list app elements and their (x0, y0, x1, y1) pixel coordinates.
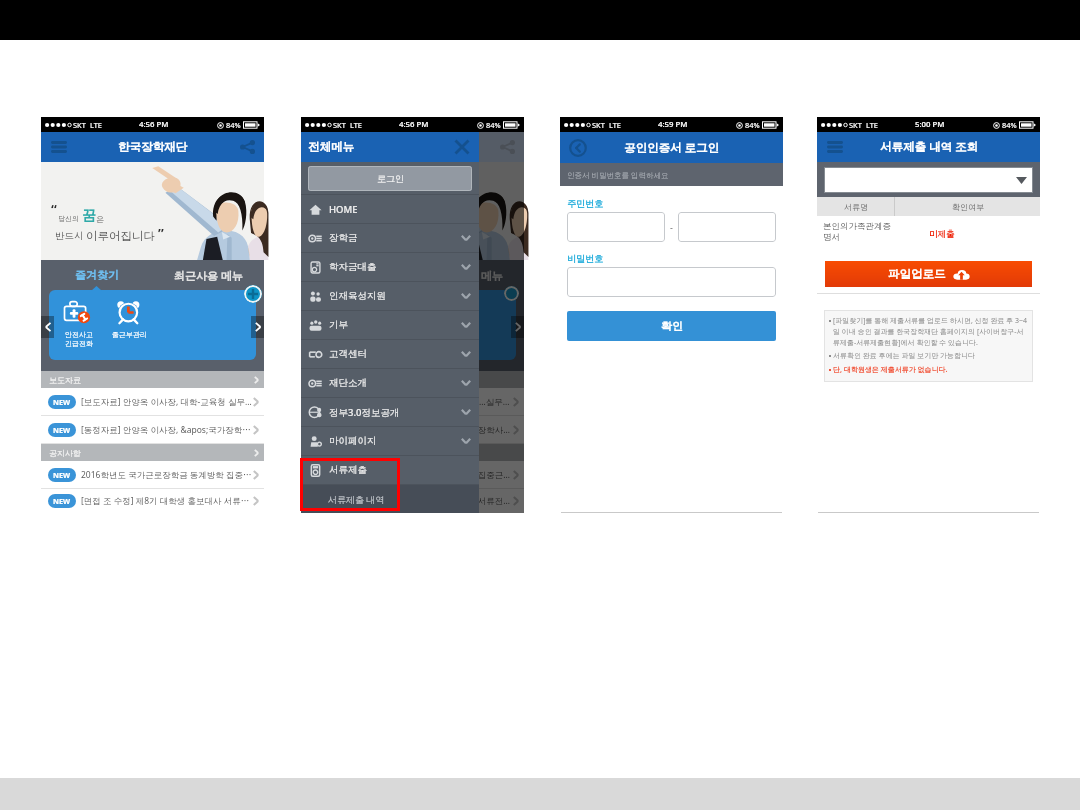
staticText: …집중근… (471, 469, 510, 481)
staticText: 4:56 PM (399, 119, 429, 130)
staticText: 서류확인 완료 후에는 파일 보기만 가능합니다 (833, 351, 1029, 361)
staticText: 주민번호 (567, 198, 603, 209)
button[interactable]: 로그인 (308, 166, 472, 191)
staticText: 한국장학재단 (118, 140, 187, 154)
staticText: …서류전… (471, 495, 510, 507)
staticText: HOME (329, 203, 358, 216)
staticText: 이루어집니다 (86, 229, 155, 243)
staticText: 공지사항 (49, 448, 81, 458)
staticText: 공인인증서 로그인 (624, 140, 719, 156)
staticText: 인증서 비밀번호를 입력하세요 (567, 170, 669, 180)
staticText: 즐겨찾기 (335, 268, 379, 282)
staticText: 공지사항 (309, 448, 341, 458)
staticText: NEW (53, 470, 71, 480)
staticText: LTE (90, 120, 102, 130)
staticText: ” (158, 224, 164, 242)
staticText: SKT (849, 120, 862, 130)
button[interactable]: 서류제출 (301, 456, 479, 484)
staticText: 단, 대학원생은 제출서류가 없습니다. (833, 365, 1029, 375)
staticText: 서류제출 내역 조회 (880, 139, 978, 155)
staticText: LTE (350, 120, 362, 130)
button[interactable]: NEW (41, 388, 264, 415)
button[interactable]: Menu (48, 136, 70, 158)
staticText: 즐겨찾기 (75, 268, 119, 282)
staticText: 서류명 (844, 202, 868, 212)
button[interactable]: Resident number back (678, 212, 776, 242)
button[interactable]: 파일업로드 (825, 261, 1032, 287)
button[interactable]: 공지사항 (41, 444, 264, 461)
staticText: 84% (1002, 120, 1017, 130)
staticText: 확인여부 (952, 202, 984, 212)
staticText: 4:59 PM (658, 119, 688, 130)
staticText: 4:56 PM (399, 119, 429, 130)
staticText: 안전사고 긴급전화 (65, 330, 93, 348)
button[interactable]: 장학금 (301, 224, 479, 252)
button[interactable]: Menu (824, 136, 846, 158)
staticText: LTE (866, 120, 878, 130)
button[interactable]: 재단소개 (301, 369, 479, 397)
staticText: 출근부관리 (112, 330, 147, 339)
button[interactable]: NEW (41, 461, 264, 488)
button[interactable]: 확인 (567, 311, 776, 341)
staticText: 최근사용 메뉴 (434, 268, 503, 283)
staticText: …실무… (479, 396, 510, 408)
staticText: 최근사용 메뉴 (174, 268, 243, 283)
button[interactable]: 즐겨찾기 (41, 260, 152, 290)
button[interactable]: NEW (41, 416, 264, 443)
button[interactable]: Close (452, 137, 472, 157)
staticText: NEW (53, 397, 71, 407)
button[interactable]: 최근사용 메뉴 (152, 260, 264, 290)
staticText: 학자금대출 (329, 261, 377, 273)
staticText: 은 (96, 214, 104, 224)
staticText: NEW (53, 425, 71, 435)
staticText: 84% (486, 120, 501, 130)
button[interactable]: 마이페이지 (301, 427, 479, 455)
button[interactable]: Resident number front (567, 212, 665, 242)
button[interactable]: 안전사고 긴급전화 (60, 299, 98, 348)
staticText: 기부 (329, 319, 348, 331)
staticText: 재단소개 (329, 377, 367, 389)
staticText: LTE (609, 120, 621, 130)
button[interactable]: 정부3.0정보공개 (301, 398, 479, 426)
button[interactable]: Previous (41, 316, 54, 338)
staticText: 비밀번호 (567, 253, 603, 264)
staticText: 마이페이지 (329, 435, 377, 447)
button[interactable]: Share (237, 137, 257, 157)
staticText: 확인 (661, 319, 683, 333)
staticText: …장학사… (471, 424, 510, 436)
staticText: 로그인 (377, 173, 404, 184)
button[interactable]: HOME (301, 195, 479, 223)
button[interactable]: Select document (824, 167, 1033, 193)
staticText: SKT (73, 120, 86, 130)
staticText: 반드시 (55, 230, 84, 242)
staticText: 정부3.0정보공개 (329, 406, 400, 419)
staticText: 고객센터 (329, 348, 367, 360)
button[interactable]: 출근부관리 (110, 299, 148, 339)
staticText: SKT (592, 120, 605, 130)
staticText: SKT (333, 120, 346, 130)
button[interactable]: 인재육성지원 (301, 282, 479, 310)
staticText: [면접 조 수정] 제8기 대학생 홍보대사 서류전… (81, 495, 253, 507)
staticText: 4:56 PM (139, 119, 169, 130)
staticText: 보도자료 (309, 375, 341, 385)
staticText: 84% (745, 120, 760, 130)
button[interactable]: Password (567, 267, 776, 297)
button[interactable]: 기부 (301, 311, 479, 339)
staticText: 미제출 (929, 229, 955, 240)
staticText: [동정자료] 안양옥 이사장, &apos;국가장학사… (81, 424, 253, 436)
staticText: [파일찾기]를 통해 제출서류를 업로드 하시면, 신청 완료 후 3~4일 이… (833, 316, 1029, 347)
button[interactable]: Back (568, 138, 588, 158)
button[interactable]: 보도자료 (41, 371, 264, 388)
staticText: 꿈 (82, 207, 96, 225)
button[interactable]: Add favourite (244, 285, 262, 303)
button[interactable]: 고객센터 (301, 340, 479, 368)
button[interactable]: NEW (41, 489, 264, 513)
staticText: NEW (53, 496, 71, 506)
staticText: LTE (350, 120, 362, 130)
button[interactable]: Next (251, 316, 264, 338)
staticText: [보도자료] 안양옥 이사장, 대학-교육청 실무… (81, 396, 253, 408)
staticText: SKT (333, 120, 346, 130)
button[interactable]: 서류제출 내역 (301, 485, 479, 513)
button[interactable]: 학자금대출 (301, 253, 479, 281)
staticText: 파일업로드 (888, 267, 946, 281)
